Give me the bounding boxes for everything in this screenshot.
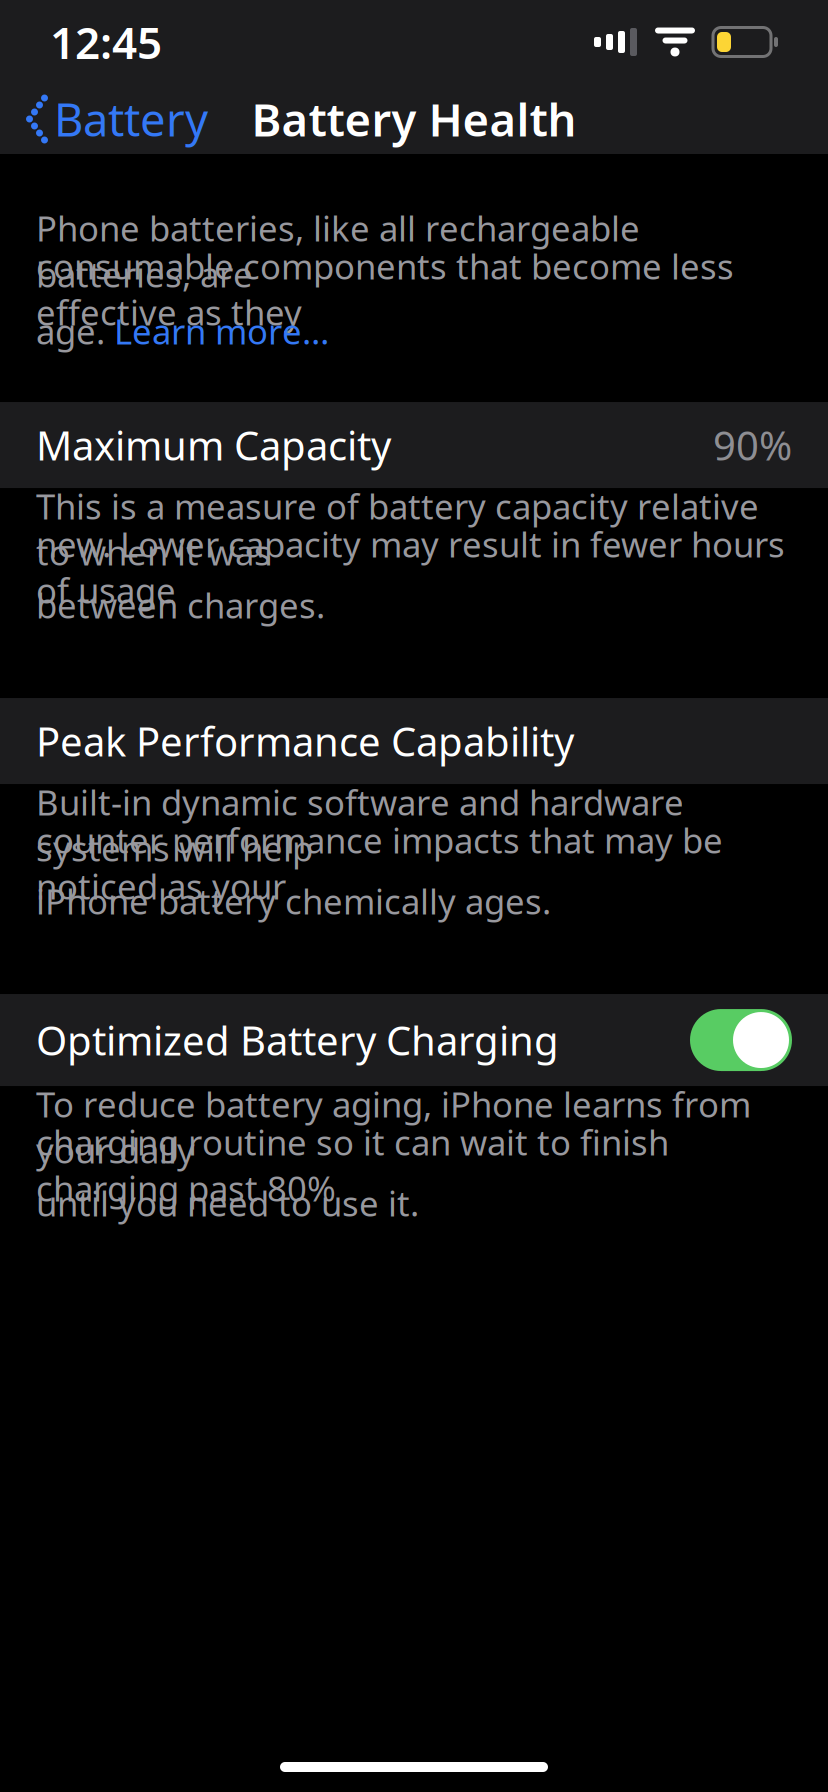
button[interactable]: Peak Performance Capability bbox=[0, 698, 828, 784]
button[interactable]: Learn more… bbox=[114, 308, 329, 354]
staticText: consumable components that become less e… bbox=[36, 243, 734, 335]
staticText: Learn more… bbox=[114, 308, 329, 354]
staticText: between charges. bbox=[36, 582, 325, 628]
staticText: Built-in dynamic software and hardware s… bbox=[36, 779, 684, 871]
staticText: Optimized Battery Charging bbox=[36, 1013, 559, 1067]
staticText: Battery Health bbox=[251, 89, 576, 149]
staticText: charging routine so it can wait to finis… bbox=[36, 1119, 669, 1211]
staticText: counter performance impacts that may be … bbox=[36, 817, 723, 909]
staticText: 12:45 bbox=[50, 13, 162, 71]
staticText: until you need to use it. bbox=[36, 1180, 419, 1226]
staticText: Phone batteries, like all rechargeable b… bbox=[36, 205, 640, 297]
staticText: This is a measure of battery capacity re… bbox=[36, 483, 759, 575]
staticText: 90% bbox=[713, 418, 792, 472]
staticText: Maximum Capacity bbox=[36, 418, 391, 472]
staticText: new. Lower capacity may result in fewer … bbox=[36, 521, 785, 613]
staticText: Peak Performance Capability bbox=[36, 714, 574, 768]
staticText: iPhone battery chemically ages. bbox=[36, 878, 551, 924]
button[interactable]: Battery bbox=[0, 85, 230, 153]
button[interactable]: Optimized Battery Charging bbox=[0, 994, 828, 1086]
button[interactable]: Maximum Capacity bbox=[0, 402, 828, 488]
staticText: age. bbox=[36, 308, 114, 354]
staticText: To reduce battery aging, iPhone learns f… bbox=[36, 1081, 751, 1173]
staticText: Battery bbox=[54, 89, 208, 149]
